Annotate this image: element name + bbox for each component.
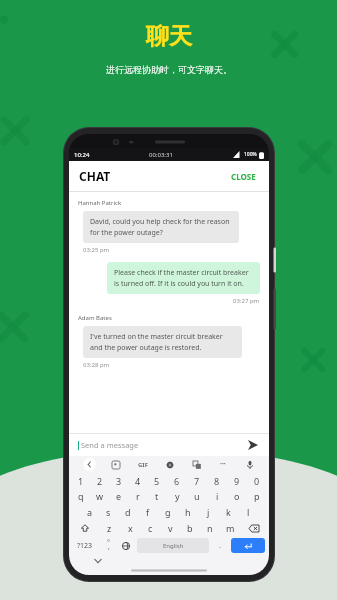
button[interactable]: u xyxy=(187,488,207,504)
staticText: 03:28 pm xyxy=(83,361,110,369)
staticText: r xyxy=(136,490,140,502)
button[interactable]: Period xyxy=(211,538,229,553)
staticText: s xyxy=(106,506,111,518)
button[interactable]: Please check if the master circuit break… xyxy=(107,262,260,294)
button[interactable]: q xyxy=(71,488,90,504)
button[interactable]: Back xyxy=(83,458,96,471)
button[interactable]: 1 xyxy=(71,473,90,488)
staticText: Please check if the master circuit break… xyxy=(114,268,253,288)
staticText: 聊天 xyxy=(146,22,192,51)
staticText: 0 xyxy=(254,475,260,487)
button[interactable]: g xyxy=(158,504,178,520)
button[interactable]: Backspace xyxy=(240,520,267,536)
button[interactable]: c xyxy=(140,520,160,536)
staticText: , xyxy=(108,542,110,552)
staticText: q xyxy=(78,490,84,502)
button[interactable]: y xyxy=(167,488,187,504)
staticText: I've turned on the master circuit breake… xyxy=(90,332,235,352)
button[interactable]: Stickers xyxy=(109,458,122,471)
button[interactable]: i xyxy=(207,488,227,504)
button[interactable]: Comma xyxy=(99,538,117,553)
staticText: CLOSE xyxy=(231,171,256,182)
staticText: p xyxy=(254,490,260,502)
button[interactable]: 0 xyxy=(247,473,267,488)
staticText: m xyxy=(226,522,235,534)
staticText: t xyxy=(155,490,159,502)
staticText: 进行远程协助时，可文字聊天。 xyxy=(106,64,232,75)
button[interactable]: t xyxy=(147,488,167,504)
button[interactable]: p xyxy=(247,488,267,504)
staticText: GIF xyxy=(138,461,148,469)
button[interactable]: David, could you help check for the reas… xyxy=(83,211,239,243)
button[interactable]: Send xyxy=(246,438,260,452)
staticText: 03:25 pm xyxy=(83,246,110,254)
button[interactable]: d xyxy=(118,504,138,520)
button[interactable]: 8 xyxy=(207,473,227,488)
staticText: h xyxy=(185,506,191,518)
staticText: x xyxy=(128,522,133,534)
button[interactable]: 6 xyxy=(167,473,187,488)
staticText: y xyxy=(175,490,180,502)
staticText: 1 xyxy=(78,475,84,487)
button[interactable]: Shift xyxy=(71,520,99,536)
button[interactable]: English xyxy=(137,538,209,553)
staticText: 00:03:31 xyxy=(149,151,173,159)
button[interactable]: j xyxy=(198,504,218,520)
button[interactable]: n xyxy=(200,520,220,536)
staticText: a xyxy=(87,506,93,518)
staticText: 03:27 pm xyxy=(233,297,260,305)
button[interactable]: Send a message xyxy=(69,434,269,456)
staticText: z xyxy=(107,522,112,534)
button[interactable]: 5 xyxy=(147,473,167,488)
staticText: u xyxy=(194,490,200,502)
button[interactable]: s xyxy=(99,504,118,520)
staticText: b xyxy=(187,522,193,534)
staticText: g xyxy=(165,506,171,518)
button[interactable]: GIF xyxy=(136,459,150,471)
staticText: ••• xyxy=(220,461,226,468)
button[interactable]: a xyxy=(80,504,99,520)
button[interactable]: Voice input xyxy=(243,458,256,471)
button[interactable]: Change language xyxy=(117,538,135,553)
staticText: 8 xyxy=(214,475,220,487)
staticText: n xyxy=(207,522,213,534)
button[interactable]: h xyxy=(178,504,198,520)
staticText: d xyxy=(125,506,131,518)
button[interactable]: w xyxy=(90,488,109,504)
button[interactable]: f xyxy=(138,504,158,520)
button[interactable]: 3 xyxy=(109,473,128,488)
staticText: 7 xyxy=(194,475,200,487)
staticText: f xyxy=(146,506,150,518)
staticText: i xyxy=(216,490,219,502)
button[interactable]: 7 xyxy=(187,473,207,488)
staticText: o xyxy=(234,490,240,502)
button[interactable]: More xyxy=(216,458,229,471)
button[interactable]: e xyxy=(109,488,128,504)
staticText: . xyxy=(219,541,221,551)
button[interactable]: 4 xyxy=(128,473,147,488)
staticText: c xyxy=(148,522,153,534)
button[interactable]: b xyxy=(180,520,200,536)
staticText: English xyxy=(163,542,184,550)
button[interactable]: l xyxy=(238,504,258,520)
button[interactable]: ?123 xyxy=(71,538,99,553)
button[interactable]: m xyxy=(220,520,240,536)
button[interactable]: Enter xyxy=(231,538,265,553)
button[interactable]: 9 xyxy=(227,473,247,488)
button[interactable]: o xyxy=(227,488,247,504)
button[interactable]: k xyxy=(218,504,238,520)
button[interactable]: 2 xyxy=(90,473,109,488)
button[interactable]: x xyxy=(120,520,140,536)
staticText: Hannah Patrick xyxy=(78,199,122,207)
button[interactable]: z xyxy=(99,520,120,536)
staticText: w xyxy=(96,490,104,502)
button[interactable]: Translate xyxy=(190,458,203,471)
staticText: e xyxy=(116,490,122,502)
button[interactable]: CLOSE xyxy=(228,169,259,184)
staticText: CHAT xyxy=(79,168,111,184)
button[interactable]: I've turned on the master circuit breake… xyxy=(83,326,242,358)
button[interactable]: Settings xyxy=(163,458,176,471)
button[interactable]: v xyxy=(160,520,180,536)
staticText: 5 xyxy=(154,475,160,487)
button[interactable]: r xyxy=(128,488,147,504)
